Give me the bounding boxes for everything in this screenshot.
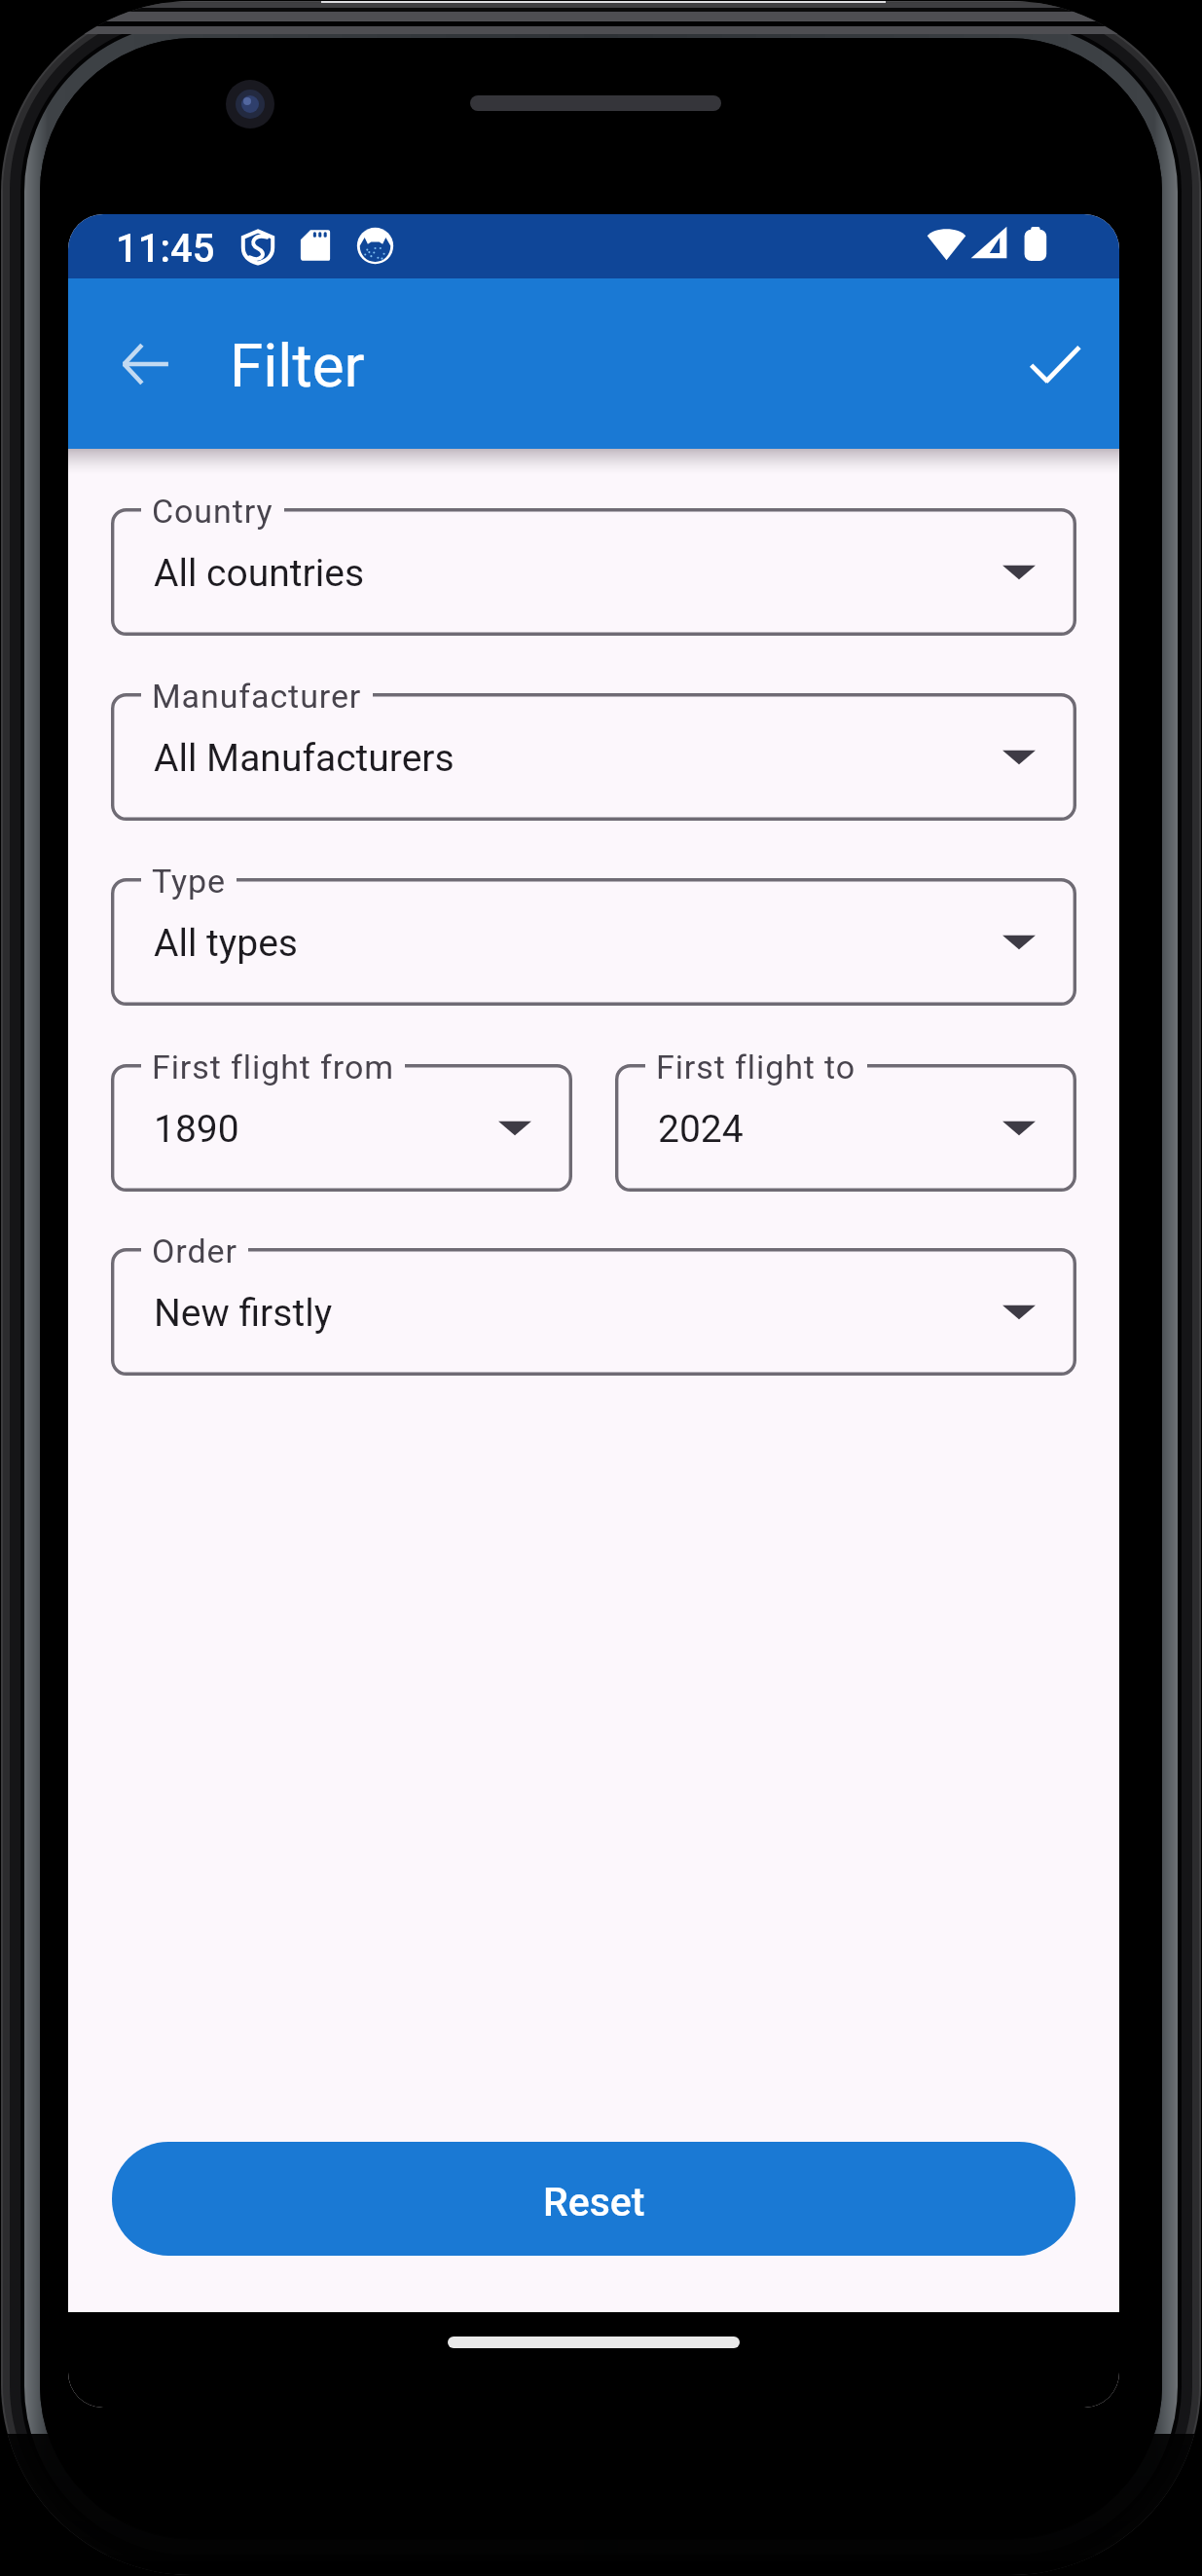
staticText: Order — [152, 1232, 237, 1270]
button[interactable]: Manufacturer — [111, 693, 1076, 821]
button[interactable]: Type — [111, 878, 1076, 1006]
button[interactable]: First flight from — [111, 1064, 572, 1192]
staticText: First flight from — [152, 1048, 394, 1086]
staticText: 2024 — [658, 1107, 744, 1152]
staticText: 11:45 — [116, 226, 215, 272]
staticText: Type — [152, 862, 226, 901]
button[interactable]: Reset — [112, 2142, 1075, 2256]
button[interactable]: First flight to — [615, 1064, 1076, 1192]
button[interactable]: Order — [111, 1248, 1076, 1376]
staticText: All Manufacturers — [154, 736, 455, 781]
button[interactable]: Country — [111, 508, 1076, 636]
staticText: Country — [152, 492, 273, 531]
staticText: New firstly — [154, 1291, 333, 1336]
button[interactable]: Back — [90, 309, 200, 420]
staticText: Filter — [230, 330, 365, 401]
button[interactable]: Apply filter — [1000, 309, 1111, 420]
staticText: All types — [154, 921, 299, 966]
staticText: First flight to — [656, 1048, 856, 1086]
staticText: All countries — [154, 551, 365, 596]
staticText: Manufacturer — [152, 677, 362, 716]
staticText: Reset — [543, 2179, 645, 2226]
staticText: 1890 — [154, 1107, 239, 1152]
